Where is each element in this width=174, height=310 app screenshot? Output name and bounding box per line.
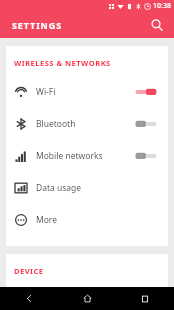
staticText: Wi-Fi	[36, 86, 134, 98]
button[interactable]: Back	[0, 287, 58, 310]
button[interactable]: Home	[58, 287, 116, 310]
staticText: 10:38	[153, 1, 171, 11]
button[interactable]: Data usage	[6, 172, 168, 204]
button[interactable]: Bluetooth	[6, 108, 168, 140]
staticText: More	[36, 214, 168, 226]
staticText: Data usage	[36, 182, 168, 194]
button[interactable]: Wi-Fi	[6, 76, 168, 108]
button[interactable]: Wi-Fi toggle	[134, 85, 160, 99]
staticText: Mobile networks	[36, 150, 134, 162]
staticText: WIRELESS & NETWORKS	[14, 58, 111, 68]
button[interactable]: Recent apps	[116, 287, 174, 310]
staticText: SETTINGS	[12, 19, 63, 31]
button[interactable]: Search	[146, 14, 168, 36]
staticText: Bluetooth	[36, 118, 134, 130]
staticText: DEVICE	[14, 266, 44, 276]
button[interactable]: Mobile networks toggle	[134, 149, 160, 163]
button[interactable]: Bluetooth toggle	[134, 117, 160, 131]
button[interactable]: More	[6, 204, 168, 236]
button[interactable]: Mobile networks	[6, 140, 168, 172]
